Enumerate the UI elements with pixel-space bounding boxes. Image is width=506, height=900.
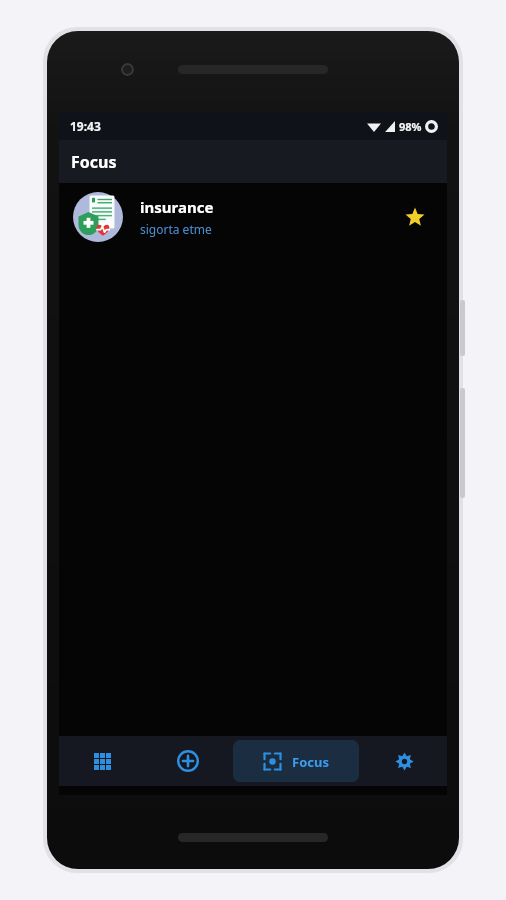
- button[interactable]: Focus: [233, 740, 359, 782]
- button[interactable]: Apps grid: [59, 736, 145, 786]
- button[interactable]: Add: [145, 736, 230, 786]
- staticText: 19:43: [70, 118, 101, 134]
- button[interactable]: Favorite: [397, 199, 433, 235]
- staticText: Focus: [71, 151, 117, 173]
- button[interactable]: Settings: [362, 736, 447, 786]
- staticText: sigorta etme: [140, 221, 212, 237]
- staticText: 98%: [399, 119, 422, 134]
- staticText: Focus: [292, 753, 329, 771]
- button[interactable]: insurance: [59, 183, 447, 251]
- staticText: insurance: [140, 197, 214, 217]
